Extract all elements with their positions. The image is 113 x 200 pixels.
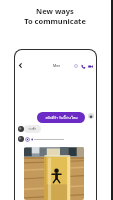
button[interactable]: ว่างจ้า [24, 125, 41, 133]
staticText: Mee [53, 63, 61, 68]
button[interactable]: Voice message [25, 136, 64, 142]
staticText: สวัสดีจ้า วันนี้ว่างไหม [45, 115, 78, 121]
staticText: ว่างจ้า [28, 127, 37, 132]
staticText: New ways [36, 6, 74, 16]
staticText: To communicate [24, 16, 86, 26]
button[interactable]: Video call [87, 63, 93, 69]
button[interactable]: Call [80, 63, 86, 69]
button[interactable]: Back [16, 61, 25, 70]
button[interactable]: สวัสดีจ้า วันนี้ว่างไหม [37, 112, 85, 123]
button[interactable]: Photo message [24, 147, 84, 200]
button[interactable]: Search [73, 63, 79, 69]
